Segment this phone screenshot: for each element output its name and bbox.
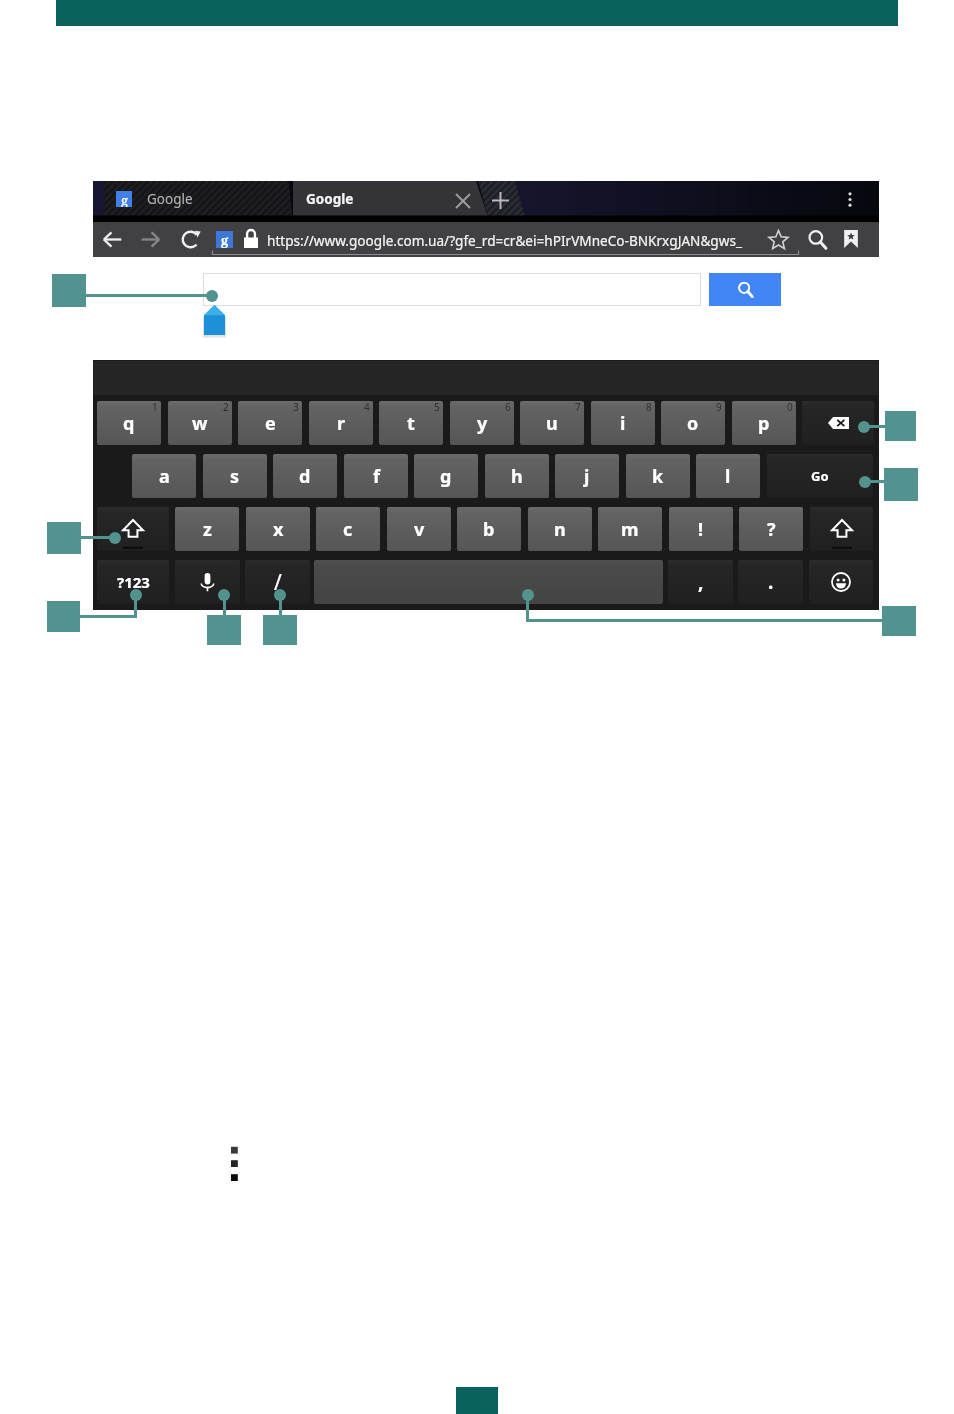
staticText: 6 [505,401,511,414]
button[interactable]: r [309,401,373,445]
button[interactable]: n [528,507,592,551]
staticText: ?123 [117,572,150,592]
staticText: i [620,411,626,436]
staticText: 2 [223,401,229,414]
staticText: ! [698,517,704,542]
staticText: c [343,517,353,542]
button[interactable]: Symbols [97,560,169,604]
staticText: b [483,517,495,542]
button[interactable]: b [457,507,521,551]
staticText: p [758,411,770,436]
staticText: Google [306,190,354,208]
button[interactable]: Search field [203,273,701,306]
staticText: e [265,411,276,436]
button[interactable]: y [450,401,514,445]
staticText: 1 [152,401,158,414]
button[interactable]: Space [314,560,663,604]
button[interactable]: ? [739,507,803,551]
button[interactable]: Google [293,181,483,217]
button[interactable]: w [168,401,232,445]
staticText: n [554,517,566,542]
staticText: q [123,411,135,436]
button[interactable]: i [591,401,655,445]
button[interactable]: c [316,507,380,551]
button[interactable]: e [238,401,302,445]
staticText: 5 [434,401,440,414]
staticText: 9 [716,401,722,414]
button[interactable]: q [97,401,161,445]
button[interactable]: Period [738,560,803,604]
staticText: m [621,517,639,542]
staticText: g [121,191,128,207]
button[interactable]: Go [767,454,873,498]
button[interactable]: ! [669,507,733,551]
button[interactable]: Emoji [809,560,873,604]
button[interactable]: Bookmark this page [768,229,789,250]
button[interactable]: f [344,454,408,498]
button[interactable]: g [414,454,478,498]
button[interactable]: Shift [810,507,873,551]
button[interactable]: l [696,454,760,498]
button[interactable]: Voice input [175,560,240,604]
staticText: / [274,568,282,597]
button[interactable]: Close tab [455,193,471,209]
button[interactable]: k [626,454,690,498]
button[interactable]: j [555,454,619,498]
button[interactable]: New tab [492,192,509,209]
button[interactable]: a [132,454,196,498]
staticText: k [652,464,664,489]
staticText: v [414,517,425,542]
staticText: https://www.google.com.ua/?gfe_rd=cr&ei=… [267,231,742,250]
button[interactable]: Bookmarks [842,229,860,249]
staticText: w [192,411,208,436]
button[interactable]: Forward [140,229,161,250]
staticText: 3 [293,401,299,414]
staticText: j [584,464,590,489]
button[interactable]: v [387,507,451,551]
button[interactable]: g [104,181,294,217]
staticText: , [698,569,704,595]
staticText: r [337,411,346,436]
button[interactable]: z [175,507,239,551]
staticText: h [511,464,523,489]
button[interactable]: Google search [709,273,781,306]
button[interactable]: d [273,454,337,498]
button[interactable]: Comma [668,560,733,604]
staticText: y [477,411,488,436]
staticText: l [725,464,731,489]
button[interactable]: Reload [181,230,200,249]
button[interactable]: Search [807,229,828,250]
button[interactable]: o [661,401,725,445]
button[interactable]: p [732,401,796,445]
staticText: u [546,411,558,436]
staticText: a [159,464,170,489]
staticText: 7 [575,401,581,414]
staticText: d [299,464,311,489]
staticText: t [407,411,415,436]
staticText: 4 [364,401,370,414]
button[interactable]: Backspace [802,401,874,445]
staticText: . [768,569,774,595]
button[interactable]: t [379,401,443,445]
button[interactable]: u [520,401,584,445]
button[interactable]: More options [848,192,852,207]
button[interactable]: x [246,507,310,551]
button[interactable]: Back [102,229,123,250]
button[interactable]: Shift [97,507,169,551]
button[interactable]: Slash [245,560,310,604]
staticText: z [203,517,212,542]
staticText: s [230,464,240,489]
button[interactable]: m [598,507,662,551]
button[interactable]: h [485,454,549,498]
staticText: f [373,464,380,489]
staticText: 8 [646,401,652,414]
button[interactable]: s [203,454,267,498]
